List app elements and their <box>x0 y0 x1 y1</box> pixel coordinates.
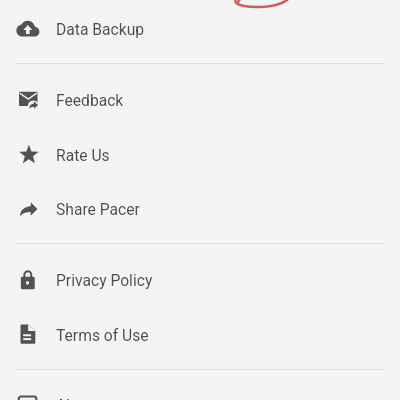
staticText: Terms of Use <box>56 326 149 344</box>
button[interactable]: About <box>0 377 400 400</box>
staticText: Privacy Policy <box>56 271 153 289</box>
button[interactable]: Rate Us <box>0 127 400 182</box>
staticText: Feedback <box>56 91 124 109</box>
button[interactable]: Share Pacer <box>0 181 400 236</box>
button[interactable]: Privacy Policy <box>0 252 400 307</box>
staticText: About <box>56 396 98 400</box>
staticText: Rate Us <box>56 146 110 164</box>
staticText: Data Backup <box>56 20 145 38</box>
staticText: Share Pacer <box>56 200 140 218</box>
button[interactable]: Data Backup <box>0 1 400 56</box>
button[interactable]: Terms of Use <box>0 307 400 362</box>
button[interactable]: Feedback <box>0 72 400 127</box>
